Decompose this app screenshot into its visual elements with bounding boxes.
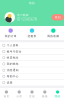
staticText: 视频 bbox=[42, 95, 48, 98]
staticText: 分类 bbox=[16, 95, 22, 98]
staticText: 账号与安全 bbox=[7, 50, 22, 53]
button[interactable]: 我的钱包 bbox=[0, 61, 64, 67]
staticText: 个人资料 bbox=[7, 44, 19, 47]
button[interactable]: 设置 bbox=[0, 80, 64, 86]
staticText: 我的 bbox=[55, 95, 61, 98]
button[interactable]: 帮助中心 bbox=[0, 73, 64, 79]
button[interactable]: 分类 bbox=[13, 88, 26, 100]
button[interactable]: 视频 bbox=[38, 88, 51, 100]
staticText: 消息通知 bbox=[7, 68, 19, 72]
staticText: 我的钱包 bbox=[7, 62, 19, 66]
button[interactable]: 收货地址 bbox=[0, 55, 64, 61]
staticText: 优惠券 bbox=[27, 34, 36, 38]
staticText: 收货地址 bbox=[7, 56, 19, 59]
button[interactable]: 消息通知 bbox=[0, 67, 64, 73]
button[interactable]: 我的订单 bbox=[0, 26, 21, 40]
staticText: 签到 bbox=[55, 16, 61, 19]
staticText: 我的订单 bbox=[5, 34, 17, 38]
staticText: ID 12345678 bbox=[17, 18, 37, 21]
button[interactable]: 首页 bbox=[0, 88, 13, 100]
staticText: 用户昵称 bbox=[17, 13, 29, 17]
button[interactable]: 签到 bbox=[52, 14, 64, 20]
staticText: 我的收藏 bbox=[47, 34, 59, 38]
staticText: 首页 bbox=[3, 95, 9, 98]
staticText: 设置 bbox=[7, 81, 13, 84]
button[interactable]: 优惠券 bbox=[21, 26, 43, 40]
button[interactable]: 发现 bbox=[26, 88, 38, 100]
staticText: 我的 bbox=[29, 1, 35, 5]
staticText: 发现 bbox=[29, 95, 35, 98]
button[interactable]: 账号与安全 bbox=[0, 48, 64, 54]
button[interactable]: 我的 bbox=[51, 88, 64, 100]
staticText: 帮助中心 bbox=[7, 75, 19, 78]
button[interactable]: 个人资料 bbox=[0, 42, 64, 48]
button[interactable]: 我的收藏 bbox=[43, 26, 64, 40]
